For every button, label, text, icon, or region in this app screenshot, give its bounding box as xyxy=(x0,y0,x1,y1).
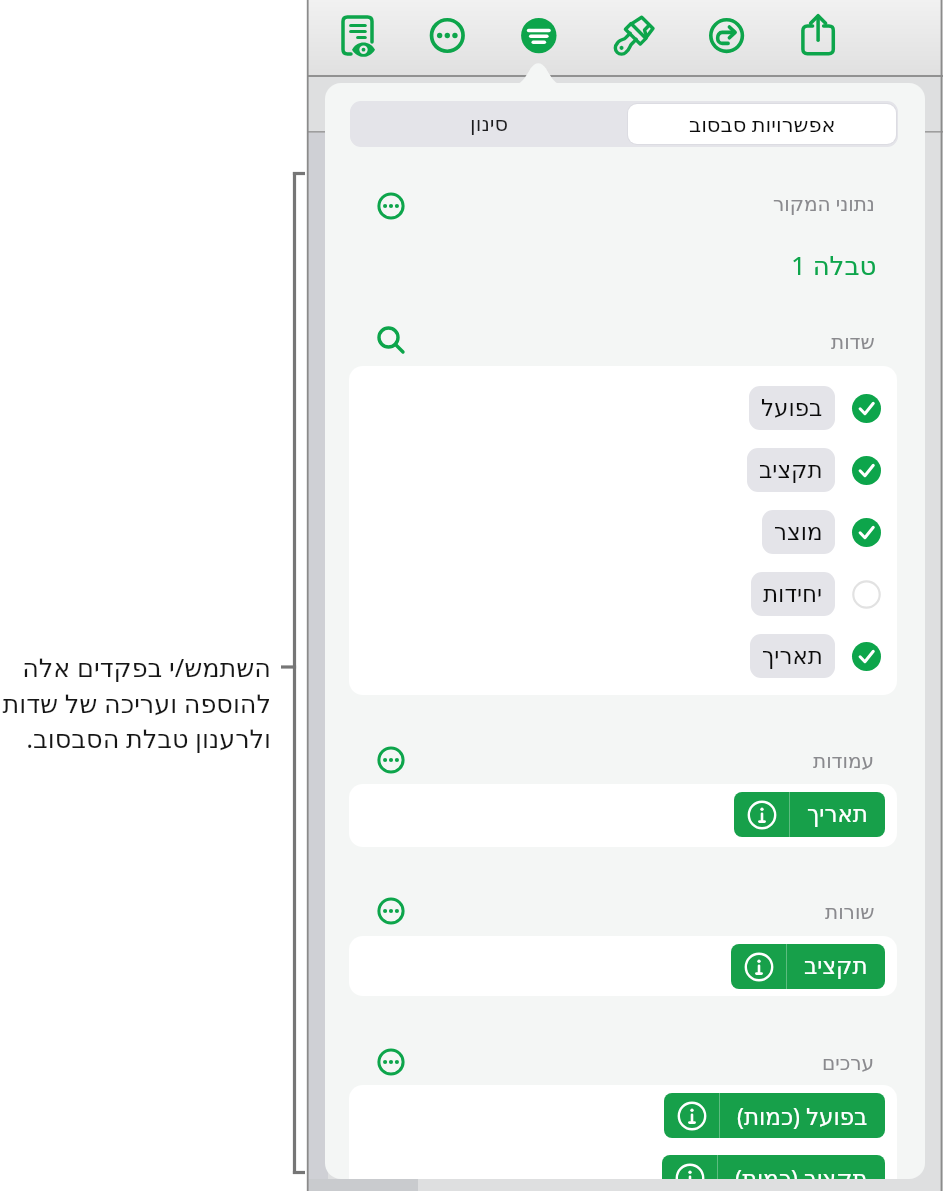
button[interactable]: יחידות xyxy=(349,572,897,616)
staticText: ערכים xyxy=(822,1051,875,1074)
staticText: תקציב (כמות) xyxy=(735,1162,868,1179)
staticText: מוצר xyxy=(774,519,823,546)
button[interactable]: מוצר xyxy=(349,510,897,554)
staticText: בפועל xyxy=(761,395,823,422)
staticText: שדות xyxy=(831,330,875,353)
staticText: נתוני המקור xyxy=(773,190,875,217)
staticText: תאריך xyxy=(807,801,868,828)
staticText: יחידות xyxy=(763,581,823,608)
button[interactable]: More options xyxy=(373,188,409,224)
button[interactable]: תקציב xyxy=(731,944,885,989)
button[interactable]: Search xyxy=(373,322,409,358)
button[interactable]: שדות xyxy=(325,323,925,359)
staticText: אפשרויות סבסוב xyxy=(689,110,836,139)
button[interactable]: תאריך xyxy=(734,792,885,837)
staticText: השתמש/י בפקדים אלה להוספה ועריכה של שדות… xyxy=(2,650,271,755)
button[interactable]: בפועל (כמות) xyxy=(664,1093,885,1138)
button[interactable]: תקציב (כמות) xyxy=(662,1155,885,1179)
button[interactable]: More options xyxy=(373,893,409,929)
staticText: שורות xyxy=(825,900,875,923)
button[interactable]: תאריך xyxy=(349,634,897,678)
button[interactable]: נתוני המקור xyxy=(325,185,925,221)
staticText: עמודות xyxy=(813,749,875,772)
staticText: תאריך xyxy=(762,643,823,670)
button[interactable]: סינון xyxy=(350,101,628,147)
staticText: סינון xyxy=(470,112,509,136)
button[interactable]: More options xyxy=(373,1044,409,1080)
button[interactable]: תקציב xyxy=(349,448,897,492)
staticText: תקציב xyxy=(804,953,868,980)
staticText: תקציב xyxy=(759,457,823,484)
staticText: טבלה 1 xyxy=(791,247,877,282)
button[interactable]: אפשרויות סבסוב xyxy=(628,104,896,144)
button[interactable]: עמודות xyxy=(325,742,925,778)
staticText: בפועל (כמות) xyxy=(737,1100,868,1131)
button[interactable]: More options xyxy=(373,742,409,778)
button[interactable]: טבלה 1 xyxy=(325,246,925,282)
button[interactable]: ערכים xyxy=(325,1044,925,1080)
button[interactable]: בפועל xyxy=(349,386,897,430)
button[interactable]: שורות xyxy=(325,893,925,929)
